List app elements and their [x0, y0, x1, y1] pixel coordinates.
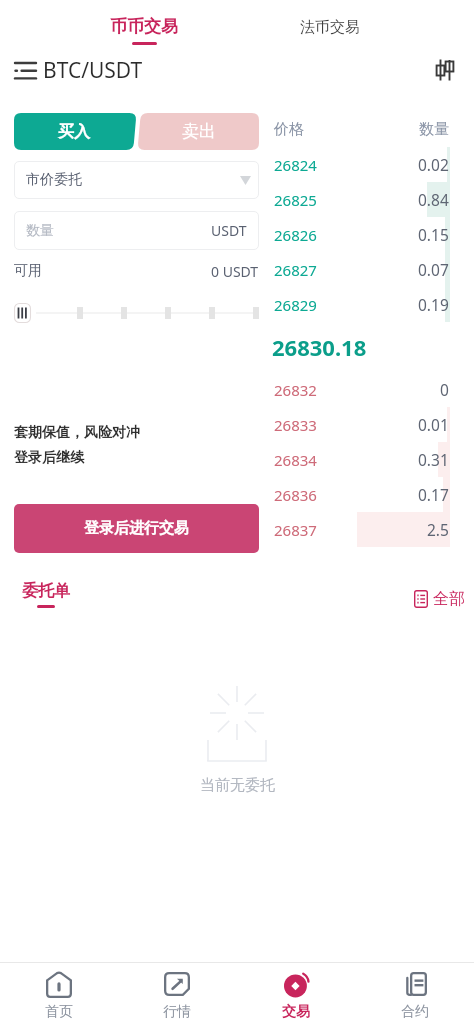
- staticText: 0.31: [418, 449, 449, 470]
- button[interactable]: 合约: [355, 963, 474, 1024]
- staticText: 价格: [274, 120, 304, 139]
- button[interactable]: 26834: [266, 442, 474, 477]
- staticText: 0: [440, 379, 449, 400]
- staticText: 26832: [274, 380, 317, 400]
- staticText: 委托单: [22, 581, 70, 601]
- button[interactable]: 26832: [266, 372, 474, 407]
- staticText: 当前无委托: [200, 776, 275, 795]
- button[interactable]: 买入: [14, 113, 135, 150]
- staticText: 套期保值，风险对冲: [14, 424, 140, 442]
- staticText: 0 USDT: [211, 262, 259, 281]
- staticText: 数量: [419, 120, 449, 139]
- button[interactable]: 26836: [266, 477, 474, 512]
- button[interactable]: 市价委托: [14, 161, 259, 199]
- staticText: 交易: [282, 1003, 310, 1021]
- button[interactable]: 26825: [266, 182, 474, 217]
- staticText: 数量: [26, 222, 54, 240]
- staticText: 法币交易: [300, 18, 360, 37]
- staticText: 0.19: [418, 294, 449, 315]
- button[interactable]: 26829: [266, 287, 474, 322]
- staticText: 登录后继续: [14, 449, 84, 467]
- staticText: 26833: [274, 415, 317, 435]
- button[interactable]: Chart: [432, 57, 458, 83]
- staticText: 买入: [58, 122, 90, 142]
- staticText: 行情: [163, 1003, 191, 1021]
- staticText: 0.02: [418, 154, 449, 175]
- button[interactable]: 26826: [266, 217, 474, 252]
- button[interactable]: 委托单: [22, 581, 70, 608]
- button[interactable]: 法币交易: [300, 18, 360, 37]
- staticText: 市价委托: [26, 171, 82, 189]
- button[interactable]: 26833: [266, 407, 474, 442]
- staticText: 26830.18: [272, 332, 367, 362]
- button[interactable]: Market list: [14, 59, 36, 81]
- staticText: 0.17: [418, 484, 449, 505]
- staticText: 26825: [274, 190, 317, 210]
- staticText: 首页: [45, 1003, 73, 1021]
- staticText: BTC/USDT: [43, 56, 143, 85]
- staticText: 合约: [401, 1003, 429, 1021]
- button[interactable]: 卖出: [141, 113, 259, 150]
- button[interactable]: 首页: [0, 963, 118, 1024]
- button[interactable]: 全部: [414, 589, 465, 609]
- staticText: 可用: [14, 262, 42, 280]
- staticText: 26837: [274, 520, 317, 540]
- staticText: USDT: [211, 221, 247, 240]
- button[interactable]: 币币交易: [110, 16, 178, 45]
- staticText: 26827: [274, 260, 317, 280]
- button[interactable]: 行情: [118, 963, 236, 1024]
- staticText: 26826: [274, 225, 317, 245]
- staticText: 0.84: [418, 189, 449, 210]
- staticText: 26836: [274, 485, 317, 505]
- button[interactable]: 交易: [236, 963, 355, 1024]
- button[interactable]: 26837: [266, 512, 474, 547]
- button[interactable]: 26827: [266, 252, 474, 287]
- button[interactable]: 26824: [266, 147, 474, 182]
- staticText: 26834: [274, 450, 317, 470]
- staticText: 卖出: [182, 121, 216, 142]
- staticText: 26829: [274, 295, 317, 315]
- staticText: 0.01: [418, 414, 449, 435]
- button[interactable]: 登录后进行交易: [14, 504, 259, 553]
- staticText: 2.5: [427, 519, 449, 540]
- staticText: 币币交易: [110, 16, 178, 37]
- staticText: 0.07: [418, 259, 449, 280]
- staticText: 全部: [433, 589, 465, 609]
- staticText: 登录后进行交易: [84, 519, 189, 538]
- staticText: 26824: [274, 155, 317, 175]
- staticText: 0.15: [418, 224, 449, 245]
